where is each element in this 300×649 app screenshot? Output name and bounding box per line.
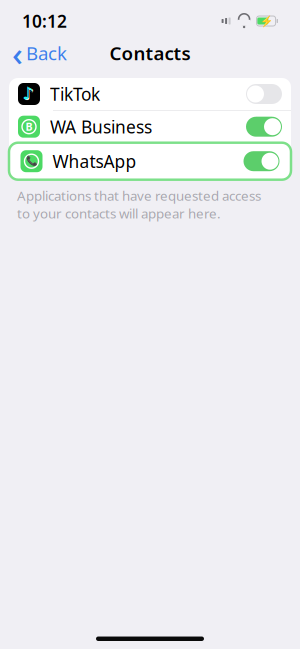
button[interactable]: ♪: [9, 78, 291, 110]
button[interactable]: 📞: [9, 143, 291, 180]
staticText: 📞: [25, 156, 37, 167]
button[interactable]: 📞: [11, 145, 288, 177]
staticText: Applications that have requested access …: [17, 187, 261, 222]
staticText: ♪: [23, 84, 34, 104]
button[interactable]: B: [9, 111, 291, 143]
staticText: ♪: [22, 83, 33, 103]
staticText: WA Business: [50, 115, 152, 138]
staticText: Contacts: [109, 41, 190, 65]
button[interactable]: ‹: [2, 27, 77, 79]
staticText: Back: [26, 41, 67, 65]
staticText: TikTok: [50, 82, 100, 105]
staticText: ⚡: [260, 15, 273, 27]
staticText: ‹: [12, 31, 23, 75]
staticText: 10:12: [22, 9, 67, 32]
staticText: B: [25, 120, 32, 134]
staticText: WhatsApp: [52, 150, 136, 173]
